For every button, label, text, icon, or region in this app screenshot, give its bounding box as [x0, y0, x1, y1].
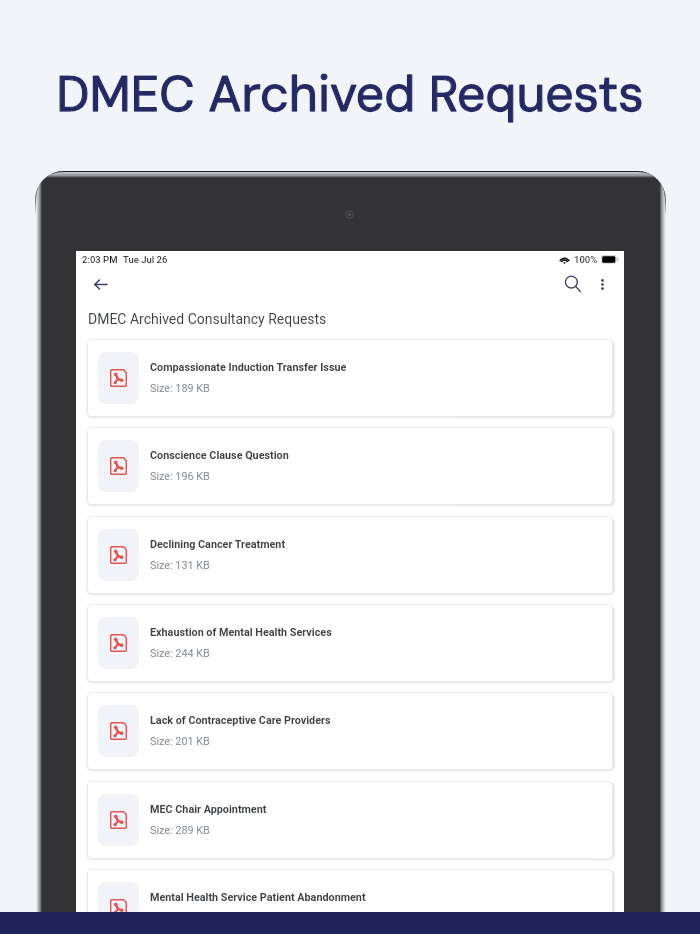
staticText: Conscience Clause Question — [150, 449, 289, 462]
staticText: MEC Chair Appointment — [150, 803, 267, 816]
button[interactable]: Compassionate Induction Transfer Issue — [87, 339, 613, 417]
staticText: DMEC Archived Requests — [0, 61, 700, 126]
staticText: Size: 131 KB — [150, 559, 210, 572]
staticText: 2:03 PM — [82, 254, 118, 265]
staticText: Size: 289 KB — [150, 824, 210, 837]
button[interactable]: More options — [591, 273, 613, 295]
button[interactable]: MEC Chair Appointment — [87, 781, 613, 859]
button[interactable]: Declining Cancer Treatment — [87, 516, 613, 594]
staticText: DMEC Archived Consultancy Requests — [88, 311, 327, 327]
button[interactable]: Search — [561, 272, 585, 296]
staticText: Lack of Contraceptive Care Providers — [150, 714, 331, 727]
staticText: Size: 201 KB — [150, 735, 210, 748]
staticText: Declining Cancer Treatment — [150, 538, 286, 551]
staticText: Exhaustion of Mental Health Services — [150, 626, 332, 639]
staticText: Compassionate Induction Transfer Issue — [150, 361, 347, 374]
button[interactable]: Back — [87, 271, 113, 297]
button[interactable]: Lack of Contraceptive Care Providers — [87, 692, 613, 770]
staticText: Size: 196 KB — [150, 470, 210, 483]
button[interactable]: Conscience Clause Question — [87, 427, 613, 505]
staticText: Size: 244 KB — [150, 647, 210, 660]
staticText: Size: 189 KB — [150, 382, 210, 395]
button[interactable]: Exhaustion of Mental Health Services — [87, 604, 613, 682]
staticText: DMEC Archived Requests — [0, 61, 700, 126]
staticText: 100% — [574, 254, 598, 265]
staticText: Tue Jul 26 — [123, 254, 168, 265]
button[interactable]: Mental Health Service Patient Abandonmen… — [87, 869, 613, 934]
staticText: Mental Health Service Patient Abandonmen… — [150, 891, 366, 904]
